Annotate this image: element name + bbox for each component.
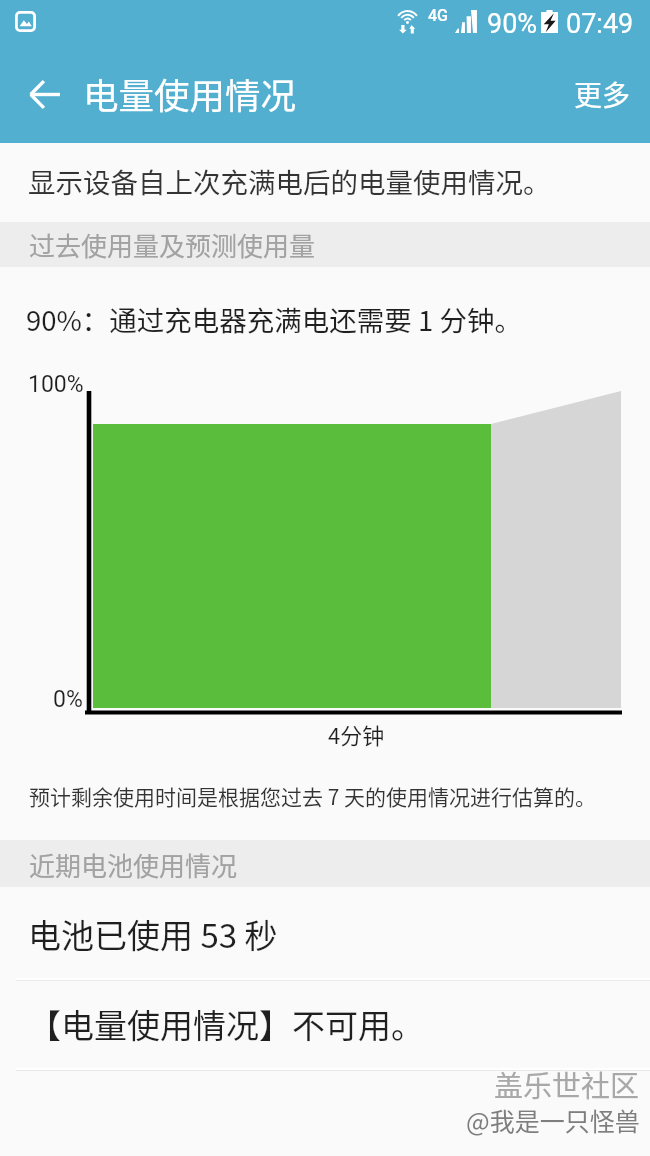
button[interactable]: 更多 [555, 52, 650, 143]
button[interactable]: 电池已使用 53 秒 [0, 889, 650, 978]
staticText: 过去使用量及预测使用量 [29, 226, 316, 264]
staticText: 07:49 [566, 8, 634, 40]
staticText: 更多 [574, 74, 631, 115]
staticText: 4分钟 [328, 718, 385, 750]
staticText: 90%：通过充电器充满电还需要 1 分钟。 [26, 299, 522, 339]
staticText: 电量使用情况 [83, 68, 297, 119]
staticText: 4G [428, 6, 448, 25]
staticText: 盖乐世社区 [494, 1063, 640, 1105]
staticText: 电池已使用 53 秒 [28, 910, 278, 958]
staticText: 显示设备自上次充满电后的电量使用情况。 [28, 161, 551, 201]
staticText: 预计剩余使用时间是根据您过去 7 天的使用情况进行估算的。 [29, 781, 597, 811]
button[interactable]: 返回 [14, 64, 74, 124]
staticText: 100% [28, 371, 84, 398]
staticText: 0% [53, 686, 83, 713]
button[interactable]: 截图 [15, 11, 36, 32]
staticText: 近期电池使用情况 [29, 846, 238, 884]
staticText: 【电量使用情况】不可用。 [28, 1000, 424, 1048]
button[interactable]: 【电量使用情况】不可用。 [0, 979, 650, 1068]
staticText: 90% [487, 8, 538, 40]
staticText: @我是一只怪兽 [466, 1102, 640, 1138]
